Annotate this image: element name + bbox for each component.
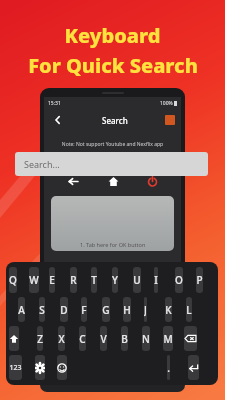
staticText: L bbox=[186, 303, 192, 317]
staticText: S bbox=[39, 303, 45, 317]
button[interactable]: G bbox=[102, 297, 110, 322]
button[interactable]: key bbox=[57, 355, 67, 380]
staticText: Y bbox=[112, 273, 118, 287]
staticText: D bbox=[60, 303, 68, 317]
staticText: P bbox=[196, 273, 203, 287]
button[interactable]: 1. Tab here for OK button bbox=[51, 196, 174, 251]
staticText: 1. Tab here for OK button bbox=[80, 241, 146, 248]
staticText: W bbox=[29, 273, 39, 287]
staticText: F bbox=[81, 303, 87, 317]
staticText: M bbox=[163, 332, 173, 346]
button[interactable]: O bbox=[175, 267, 183, 293]
button[interactable]: J bbox=[144, 297, 147, 322]
button[interactable]: P bbox=[196, 267, 203, 293]
button[interactable]: D bbox=[60, 297, 68, 322]
button[interactable]: K bbox=[165, 297, 172, 322]
staticText: For Quick Search bbox=[28, 52, 198, 79]
button[interactable]: Y bbox=[112, 267, 118, 293]
staticText: V bbox=[100, 332, 107, 346]
button[interactable]: E bbox=[49, 267, 55, 293]
button[interactable]: Home bbox=[103, 171, 123, 191]
staticText: R bbox=[70, 273, 77, 287]
staticText: 100% bbox=[160, 100, 173, 107]
staticText: B bbox=[121, 332, 128, 346]
button[interactable]: Search... bbox=[15, 152, 208, 176]
staticText: O bbox=[175, 273, 183, 287]
staticText: Search... bbox=[24, 158, 60, 170]
staticText: H bbox=[123, 303, 131, 317]
staticText: C bbox=[79, 332, 86, 346]
staticText: Z bbox=[37, 332, 43, 346]
button[interactable]: N bbox=[142, 326, 150, 351]
button[interactable]: key bbox=[188, 355, 199, 380]
button[interactable]: U bbox=[133, 267, 141, 293]
button[interactable]: R bbox=[70, 267, 77, 293]
button[interactable]: F bbox=[81, 297, 87, 322]
button[interactable]: S bbox=[39, 297, 45, 322]
button[interactable]: Cast bbox=[165, 115, 175, 125]
button[interactable]: L bbox=[186, 297, 192, 322]
staticText: I bbox=[154, 273, 158, 287]
button[interactable]: 123 bbox=[9, 355, 22, 380]
staticText: G bbox=[102, 303, 110, 317]
staticText: X bbox=[58, 332, 65, 346]
button[interactable]: T bbox=[91, 267, 97, 293]
button[interactable]: V bbox=[100, 326, 107, 351]
staticText: Keyboard bbox=[64, 22, 161, 49]
staticText: Note: Not support Youtube and Nexflix ap… bbox=[44, 141, 181, 148]
button[interactable]: Z bbox=[37, 326, 43, 351]
button[interactable]: Q bbox=[9, 267, 17, 293]
button[interactable]: I bbox=[154, 267, 158, 293]
button[interactable]: key bbox=[184, 326, 197, 351]
staticText: U bbox=[133, 273, 141, 287]
button[interactable]: A bbox=[18, 297, 25, 322]
staticText: N bbox=[142, 332, 150, 346]
staticText: A bbox=[18, 303, 25, 317]
staticText: J bbox=[144, 303, 147, 317]
button[interactable]: M bbox=[163, 326, 173, 351]
staticText: 15:31 bbox=[48, 100, 61, 107]
staticText: E bbox=[49, 273, 55, 287]
button[interactable]: H bbox=[123, 297, 131, 322]
button[interactable]: W bbox=[29, 267, 39, 293]
button[interactable]: B bbox=[121, 326, 128, 351]
button[interactable]: . bbox=[167, 355, 170, 380]
staticText: 123 bbox=[9, 363, 22, 373]
button[interactable]: key bbox=[9, 326, 19, 351]
button[interactable]: Back bbox=[50, 112, 66, 128]
staticText: Q bbox=[9, 273, 17, 287]
button[interactable]: Power bbox=[142, 171, 162, 191]
staticText: K bbox=[165, 303, 172, 317]
button[interactable]: X bbox=[58, 326, 65, 351]
button[interactable]: C bbox=[79, 326, 86, 351]
staticText: Search bbox=[102, 115, 128, 126]
staticText: T bbox=[91, 273, 97, 287]
button[interactable]: Back bbox=[63, 171, 83, 191]
button[interactable]: key bbox=[35, 355, 45, 380]
staticText: . bbox=[167, 361, 170, 375]
